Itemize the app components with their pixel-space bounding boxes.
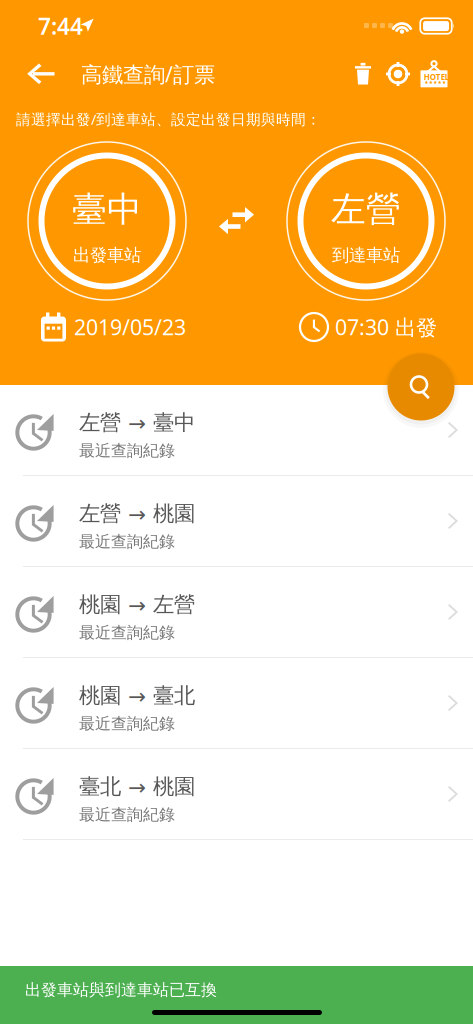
button[interactable]: Delete history <box>346 52 380 96</box>
staticText: 臺中 <box>72 188 142 231</box>
staticText: 最近查詢紀錄 <box>79 805 175 824</box>
button[interactable]: Nearby station <box>380 52 416 96</box>
staticText: 最近查詢紀錄 <box>79 532 175 551</box>
staticText: 請選擇出發/到達車站、設定出發日期與時間： <box>16 109 321 129</box>
button[interactable]: Search trains <box>379 345 463 429</box>
staticText: 7:44 <box>38 11 83 41</box>
button[interactable]: 左營 → 臺中 <box>0 385 473 476</box>
button[interactable]: 2019/05/23 <box>41 305 186 349</box>
staticText: 臺北 → 桃園 <box>79 774 195 800</box>
button[interactable]: Hotel <box>416 52 452 96</box>
button[interactable]: 桃園 → 左營 <box>0 567 473 658</box>
staticText: 最近查詢紀錄 <box>79 441 175 460</box>
staticText: 07:30 出發 <box>335 313 437 341</box>
staticText: 出發車站與到達車站已互換 <box>25 980 217 1000</box>
staticText: 高鐵查詢/訂票 <box>81 60 215 88</box>
staticText: 左營 → 臺中 <box>79 410 195 436</box>
button[interactable]: 左營 <box>287 142 445 300</box>
button[interactable]: 臺中 <box>28 142 186 300</box>
staticText: 左營 <box>331 188 401 231</box>
button[interactable]: Back <box>27 52 81 96</box>
staticText: 桃園 → 臺北 <box>79 683 195 709</box>
staticText: 2019/05/23 <box>74 313 186 341</box>
staticText: HOTEL <box>424 71 449 82</box>
button[interactable]: 左營 → 桃園 <box>0 476 473 567</box>
staticText: 到達車站 <box>332 245 400 266</box>
staticText: 出發車站 <box>73 245 141 266</box>
button[interactable]: 桃園 → 臺北 <box>0 658 473 749</box>
staticText: 最近查詢紀錄 <box>79 714 175 733</box>
button[interactable]: Swap departure and arrival stations <box>213 201 259 241</box>
staticText: 桃園 → 左營 <box>79 592 195 618</box>
button[interactable]: 07:30 出發 <box>300 305 437 349</box>
staticText: 左營 → 桃園 <box>79 501 195 527</box>
button[interactable]: 臺北 → 桃園 <box>0 749 473 840</box>
staticText: 最近查詢紀錄 <box>79 623 175 642</box>
